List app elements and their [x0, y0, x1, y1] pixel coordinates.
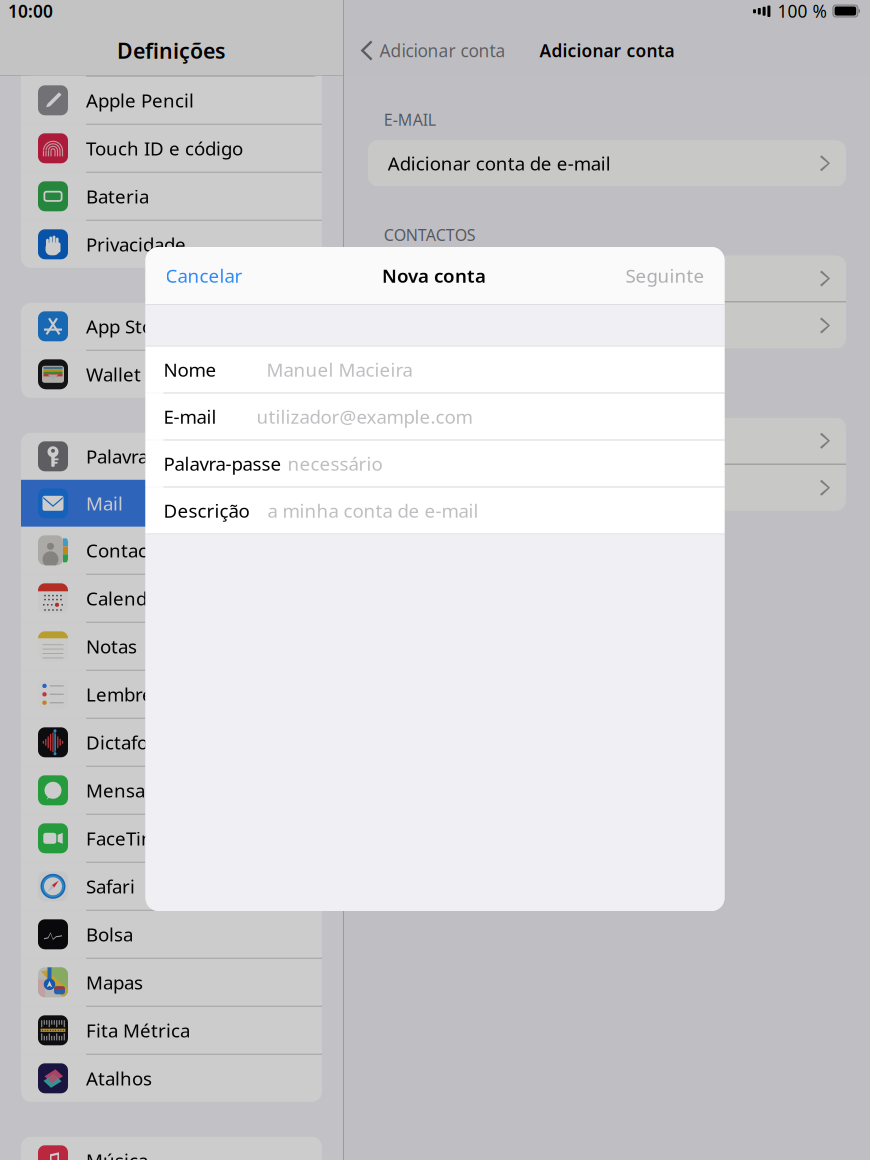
button[interactable]: Mensagens: [21, 767, 322, 814]
staticText: Mensagens: [86, 778, 188, 803]
staticText: E-MAIL: [384, 109, 436, 130]
button[interactable]: Adicionar conta: [344, 26, 505, 75]
button[interactable]: FaceTime: [21, 815, 322, 862]
staticText: Atalhos: [86, 1066, 152, 1091]
staticText: Calendário: [86, 586, 181, 611]
button[interactable]: Notas: [21, 623, 322, 670]
staticText: Bateria: [86, 184, 149, 209]
staticText: 100 %: [777, 0, 826, 22]
staticText: Música: [86, 1148, 148, 1160]
button[interactable]: Bolsa: [21, 911, 322, 958]
button[interactable]: Lembretes: [21, 671, 322, 718]
button[interactable]: Calendário: [21, 575, 322, 622]
staticText: necessário: [287, 451, 382, 476]
staticText: CALENDÁRIOS: [384, 386, 490, 408]
staticText: Adicionar conta: [379, 39, 505, 62]
staticText: Mapas: [86, 970, 143, 995]
button[interactable]: App Store: [21, 303, 322, 350]
button[interactable]: Música: [21, 1137, 322, 1160]
staticText: iCloud: [388, 266, 444, 291]
staticText: FaceTime: [86, 826, 169, 851]
staticText: Contactos: [86, 538, 174, 563]
staticText: Privacidade: [86, 232, 186, 257]
button[interactable]: Mapas: [21, 959, 322, 1006]
button[interactable]: Outra: [368, 302, 846, 348]
staticText: Descrição: [163, 498, 249, 523]
button[interactable]: Palavras-passe: [21, 433, 322, 480]
staticText: a minha conta de e-mail: [267, 498, 478, 523]
staticText: Notas: [86, 634, 137, 659]
button[interactable]: iCloud: [368, 255, 846, 301]
staticText: Nova conta: [382, 263, 486, 288]
staticText: Adicionar conta: [539, 39, 674, 62]
staticText: Definições: [117, 36, 226, 65]
staticText: iCloud: [388, 428, 444, 453]
staticText: E-mail: [163, 404, 216, 429]
button[interactable]: Bateria: [21, 173, 322, 220]
staticText: utilizador@example.com: [256, 404, 472, 429]
button[interactable]: Wallet e Apple Pay: [21, 351, 322, 398]
button[interactable]: Seguinte: [605, 247, 724, 304]
button[interactable]: Adicionar conta de e-mail: [368, 140, 846, 186]
button[interactable]: Safari: [21, 863, 322, 910]
button[interactable]: Atalhos: [21, 1055, 322, 1102]
staticText: Dictafone: [86, 730, 171, 755]
staticText: App Store: [86, 314, 171, 339]
staticText: Touch ID e código: [86, 136, 243, 161]
button[interactable]: Contactos: [21, 527, 322, 574]
staticText: Lembretes: [86, 682, 180, 707]
button[interactable]: Privacidade: [21, 221, 322, 268]
staticText: Fita Métrica: [86, 1018, 190, 1043]
staticText: Apple Pencil: [86, 88, 194, 113]
staticText: Safari: [86, 874, 135, 899]
button[interactable]: Fita Métrica: [21, 1007, 322, 1054]
staticText: Manuel Macieira: [266, 357, 412, 382]
staticText: Bolsa: [86, 922, 133, 947]
button[interactable]: Outra: [368, 465, 846, 511]
staticText: 10:00: [8, 0, 53, 22]
button[interactable]: Dictafone: [21, 719, 322, 766]
staticText: Palavras-passe: [86, 444, 213, 469]
button[interactable]: Mail: [21, 480, 322, 527]
staticText: Seguinte: [625, 263, 704, 288]
button[interactable]: Touch ID e código: [21, 125, 322, 172]
staticText: Wallet e Apple Pay: [86, 362, 248, 387]
staticText: Palavra-passe: [163, 451, 281, 476]
button[interactable]: Cancelar: [145, 247, 262, 304]
staticText: Outra: [388, 475, 439, 500]
staticText: Mail: [86, 491, 123, 516]
staticText: Adicionar conta de e-mail: [388, 151, 611, 176]
staticText: Cancelar: [165, 263, 242, 288]
staticText: CONTACTOS: [384, 224, 476, 245]
button[interactable]: iCloud: [368, 418, 846, 464]
button[interactable]: Apple Pencil: [21, 77, 322, 124]
staticText: Nome: [163, 357, 216, 382]
